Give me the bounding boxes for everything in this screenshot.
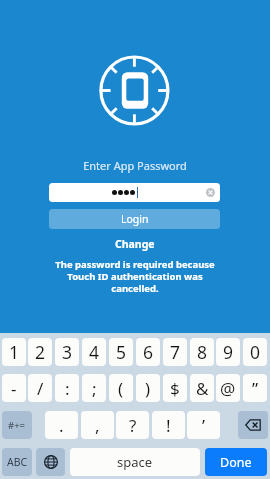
staticText: #+= [8, 419, 26, 432]
staticText: / [37, 377, 44, 400]
staticText: ” [252, 377, 259, 400]
button[interactable]: ; [82, 374, 106, 402]
button[interactable]: ) [136, 374, 160, 402]
staticText: ) [145, 377, 151, 400]
staticText: Enter App Password [0, 158, 270, 173]
staticText: , [95, 414, 100, 437]
staticText: Change [115, 237, 155, 251]
staticText: 3 [62, 340, 73, 364]
staticText: ABC [7, 455, 28, 469]
staticText: 2 [35, 340, 46, 364]
button[interactable]: ! [152, 411, 185, 439]
staticText: 1 [9, 340, 20, 364]
button[interactable]: ” [243, 374, 267, 402]
staticText: Done [220, 454, 252, 471]
button[interactable]: space [70, 448, 200, 476]
staticText: . [59, 414, 64, 437]
button[interactable]: 3 [55, 338, 79, 366]
staticText: 5 [116, 340, 127, 364]
button[interactable]: / [28, 374, 52, 402]
button[interactable]: & [190, 374, 214, 402]
staticText: 9 [223, 340, 234, 364]
button[interactable]: Login [49, 209, 220, 229]
staticText: Login [121, 212, 149, 226]
button[interactable]: Delete [238, 411, 268, 439]
staticText: The password is required because Touch I… [45, 258, 225, 295]
button[interactable]: 6 [136, 338, 160, 366]
button[interactable]: - [2, 374, 26, 402]
button[interactable]: ’ [187, 411, 220, 439]
button[interactable]: #+= [2, 411, 32, 439]
button[interactable]: , [81, 411, 114, 439]
staticText: ’ [202, 414, 205, 437]
staticText: 8 [197, 340, 208, 364]
button[interactable]: Change [85, 235, 185, 253]
button[interactable]: 5 [109, 338, 133, 366]
button[interactable]: Clear text [201, 183, 220, 202]
staticText: & [196, 377, 209, 400]
button[interactable]: 7 [163, 338, 187, 366]
staticText: ? [129, 414, 137, 437]
staticText: ; [92, 377, 97, 400]
button[interactable]: 2 [28, 338, 52, 366]
staticText: 6 [143, 340, 154, 364]
staticText: ( [118, 377, 124, 400]
button[interactable]: 1 [2, 338, 26, 366]
button[interactable]: ( [109, 374, 133, 402]
staticText: ! [166, 414, 171, 437]
button[interactable]: Switch keyboard language [36, 448, 65, 476]
button[interactable]: Clear text [49, 183, 220, 202]
staticText: : [65, 377, 70, 400]
staticText: - [11, 377, 17, 400]
staticText: $ [170, 377, 180, 400]
button[interactable]: 8 [190, 338, 214, 366]
button[interactable]: 4 [82, 338, 106, 366]
button[interactable]: $ [163, 374, 187, 402]
staticText: 4 [89, 340, 100, 364]
button[interactable]: ? [116, 411, 149, 439]
staticText: space [117, 453, 153, 471]
button[interactable]: 9 [216, 338, 240, 366]
staticText: @ [220, 377, 236, 400]
staticText: 7 [170, 340, 181, 364]
staticText: 0 [250, 340, 261, 364]
button[interactable]: 0 [243, 338, 267, 366]
button[interactable]: ABC [2, 448, 32, 476]
button[interactable]: @ [216, 374, 240, 402]
button[interactable]: Done [205, 448, 267, 476]
button[interactable]: . [45, 411, 78, 439]
button[interactable]: : [55, 374, 79, 402]
